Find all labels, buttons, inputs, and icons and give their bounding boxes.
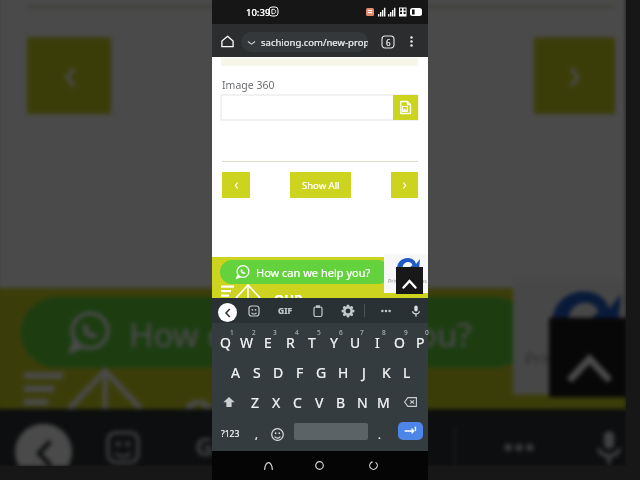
staticText: L bbox=[403, 363, 411, 382]
button[interactable]: More bbox=[375, 300, 396, 321]
button[interactable]: C bbox=[287, 387, 308, 417]
staticText: 9 bbox=[404, 328, 408, 337]
button[interactable]: I bbox=[366, 327, 388, 357]
staticText: Image 360 bbox=[222, 78, 275, 92]
staticText: B bbox=[336, 393, 346, 412]
button[interactable]: Previous bbox=[222, 172, 250, 198]
button[interactable]: X bbox=[266, 387, 287, 417]
button[interactable]: Back bbox=[218, 303, 237, 322]
button[interactable]: . bbox=[370, 420, 388, 448]
button[interactable]: Enter bbox=[398, 422, 423, 440]
button[interactable]: F bbox=[289, 357, 311, 387]
button[interactable]: , bbox=[246, 420, 266, 448]
button[interactable]: Home bbox=[217, 31, 237, 51]
button[interactable]: Clipboard bbox=[307, 300, 328, 321]
button[interactable]: Z bbox=[245, 387, 266, 417]
button[interactable]: Shift bbox=[218, 387, 240, 417]
staticText: GIF bbox=[278, 305, 293, 317]
button[interactable]: More options bbox=[400, 30, 423, 53]
button[interactable]: M bbox=[373, 387, 394, 417]
button[interactable]: A bbox=[224, 357, 246, 387]
staticText: A bbox=[231, 363, 240, 382]
button[interactable]: G bbox=[310, 357, 332, 387]
staticText: Privacy - Terms bbox=[388, 277, 427, 284]
button[interactable]: V bbox=[309, 387, 330, 417]
staticText: N bbox=[357, 393, 368, 412]
button[interactable]: GIF bbox=[275, 300, 296, 321]
staticText: 4 bbox=[295, 328, 299, 337]
button[interactable]: Next bbox=[534, 37, 615, 114]
button[interactable]: Next bbox=[391, 172, 418, 198]
button[interactable]: H bbox=[332, 357, 354, 387]
staticText: 2 bbox=[252, 328, 256, 337]
staticText: I bbox=[375, 333, 380, 352]
button[interactable]: B bbox=[330, 387, 351, 417]
button[interactable]: Show All bbox=[231, 37, 414, 114]
button[interactable]: How can we help you? bbox=[220, 260, 390, 284]
button[interactable]: U bbox=[344, 327, 366, 357]
button[interactable]: Scroll to top bbox=[396, 267, 423, 294]
button[interactable]: More bbox=[486, 415, 549, 466]
staticText: H bbox=[338, 363, 349, 382]
button[interactable]: L bbox=[396, 357, 418, 387]
button[interactable]: E bbox=[257, 327, 279, 357]
button[interactable]: Previous bbox=[27, 37, 111, 114]
button[interactable]: R bbox=[279, 327, 301, 357]
button[interactable]: Show All bbox=[290, 172, 351, 198]
button[interactable]: S bbox=[246, 357, 268, 387]
staticText: 0 bbox=[425, 328, 429, 337]
button[interactable]: W bbox=[236, 327, 258, 357]
button[interactable]: Recents bbox=[363, 451, 383, 480]
staticText: T bbox=[308, 333, 316, 352]
staticText: 6 bbox=[339, 328, 343, 337]
button[interactable]: Scroll to top bbox=[549, 318, 626, 397]
button[interactable]: Back bbox=[258, 451, 278, 480]
staticText: 5 bbox=[317, 328, 321, 337]
button[interactable]: D bbox=[267, 357, 289, 387]
staticText: D bbox=[273, 363, 284, 382]
button[interactable]: Stickers bbox=[243, 300, 264, 321]
button[interactable]: Emoji bbox=[266, 420, 288, 448]
staticText: OUR bbox=[183, 385, 270, 439]
button[interactable]: How can we help you? bbox=[21, 297, 531, 368]
button[interactable]: Stickers bbox=[90, 415, 153, 466]
staticText: M bbox=[377, 393, 390, 412]
staticText: J bbox=[362, 363, 366, 382]
staticText: X bbox=[272, 393, 281, 412]
button[interactable]: Tabs bbox=[376, 30, 399, 53]
button[interactable]: Voice input bbox=[576, 415, 626, 466]
button[interactable]: P bbox=[409, 327, 431, 357]
staticText: E bbox=[264, 333, 272, 352]
button[interactable]: O bbox=[388, 327, 410, 357]
button[interactable]: GIF bbox=[186, 415, 249, 466]
button[interactable]: N bbox=[352, 387, 373, 417]
staticText: Privacy - Terms bbox=[525, 347, 626, 368]
staticText: ?123 bbox=[221, 428, 240, 440]
button[interactable]: Settings bbox=[372, 415, 435, 466]
button[interactable]: Y bbox=[323, 327, 345, 357]
button[interactable]: ?123 bbox=[216, 420, 244, 448]
staticText: How can we help you? bbox=[129, 312, 474, 356]
button[interactable]: Back bbox=[15, 424, 72, 466]
button[interactable]: Backspace bbox=[399, 387, 421, 417]
button[interactable]: Choose image bbox=[393, 95, 418, 120]
button[interactable] bbox=[221, 95, 418, 120]
staticText: U bbox=[350, 333, 361, 352]
staticText: How can we help you? bbox=[256, 265, 371, 280]
button[interactable]: sachiong.com/new-prop bbox=[241, 32, 368, 52]
button[interactable]: J bbox=[353, 357, 375, 387]
button[interactable]: Q bbox=[214, 327, 236, 357]
staticText: P bbox=[416, 333, 425, 352]
staticText: V bbox=[315, 393, 324, 412]
button[interactable]: Home bbox=[309, 451, 329, 480]
staticText: K bbox=[382, 363, 391, 382]
button[interactable]: Settings bbox=[337, 300, 358, 321]
staticText: . bbox=[378, 427, 381, 442]
staticText: GIF bbox=[195, 430, 240, 465]
button[interactable]: Clipboard bbox=[282, 415, 345, 466]
button[interactable]: K bbox=[375, 357, 397, 387]
staticText: W bbox=[240, 333, 254, 352]
button[interactable]: T bbox=[301, 327, 323, 357]
button[interactable]: Voice input bbox=[405, 300, 426, 321]
